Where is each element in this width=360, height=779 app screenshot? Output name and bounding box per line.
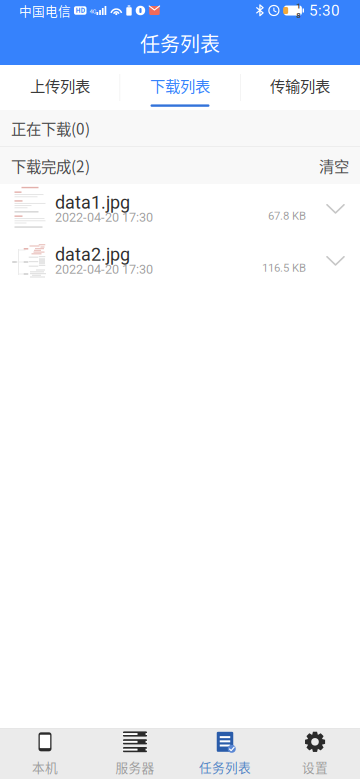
button[interactable]: data2.jpg [0, 236, 360, 288]
staticText: 中国电信 [19, 1, 71, 20]
button[interactable]: 设置 [270, 729, 360, 779]
staticText: 4G [89, 8, 96, 15]
button[interactable]: 本机 [0, 729, 90, 779]
staticText: data2.jpg [55, 244, 130, 265]
button[interactable]: 传输列表 [240, 65, 360, 110]
button[interactable]: 清空 [319, 154, 349, 177]
staticText: 下载完成(2) [11, 154, 90, 177]
staticText: 18 [296, 1, 301, 20]
staticText: 设置 [302, 758, 328, 776]
staticText: 67.8 KB [268, 209, 306, 223]
staticText: 任务列表 [140, 28, 220, 57]
staticText: 2022-04-20 17:30 [55, 262, 153, 277]
staticText: 上传列表 [30, 74, 90, 96]
staticText: 5:30 [309, 1, 340, 19]
staticText: data1.jpg [55, 192, 130, 213]
button[interactable]: data1.jpg [0, 184, 360, 236]
staticText: 2022-04-20 17:30 [55, 210, 153, 225]
staticText: 下载列表 [150, 74, 210, 96]
button[interactable]: 下载列表 [120, 65, 240, 110]
staticText: 任务列表 [199, 758, 251, 776]
staticText: 本机 [32, 758, 58, 776]
staticText: 清空 [319, 154, 349, 177]
button[interactable]: 上传列表 [0, 65, 120, 110]
staticText: 116.5 KB [262, 261, 306, 275]
button[interactable]: 服务器 [90, 729, 180, 779]
staticText: 服务器 [115, 758, 154, 776]
staticText: HD [76, 7, 85, 14]
staticText: 传输列表 [270, 74, 330, 96]
button[interactable]: 任务列表 [180, 729, 270, 779]
staticText: 正在下载(0) [11, 117, 90, 139]
